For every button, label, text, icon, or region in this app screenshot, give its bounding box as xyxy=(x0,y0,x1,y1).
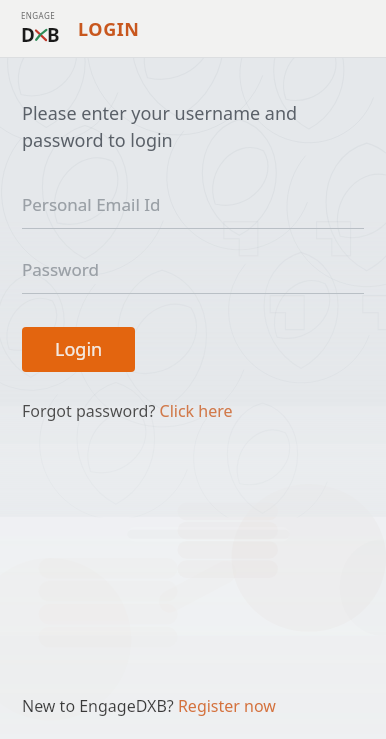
button[interactable]: Forgot password? Click here xyxy=(22,400,233,422)
button[interactable]: New to EngageDXB? Register now xyxy=(22,695,276,717)
staticText: Please enter your username and password … xyxy=(22,101,364,152)
staticText: Login xyxy=(55,337,103,362)
staticText: B xyxy=(47,22,60,48)
staticText: LOGIN xyxy=(78,17,140,42)
staticText: D xyxy=(21,22,35,48)
staticText: Forgot password? Click here xyxy=(22,400,233,422)
staticText: Personal Email Id xyxy=(22,193,161,216)
button[interactable]: Password xyxy=(22,251,364,294)
button[interactable]: Personal Email Id xyxy=(22,186,364,229)
staticText: ENGAGE xyxy=(21,10,55,21)
staticText: New to EngageDXB? Register now xyxy=(22,695,276,717)
staticText: Password xyxy=(22,258,99,281)
button[interactable]: Login xyxy=(22,327,135,372)
